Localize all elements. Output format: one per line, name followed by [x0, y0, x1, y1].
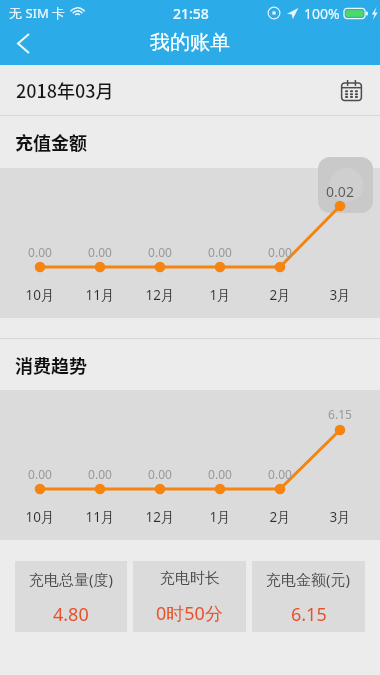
- staticText: 0.00: [266, 466, 294, 482]
- button[interactable]: 2018年03月: [0, 65, 380, 115]
- staticText: 消费趋势: [15, 352, 87, 378]
- button[interactable]: Back: [0, 26, 46, 65]
- staticText: 0.00: [26, 466, 54, 482]
- button[interactable]: 充电金额(元): [252, 561, 365, 632]
- staticText: 3月: [320, 508, 360, 526]
- staticText: 4.80: [53, 602, 89, 627]
- staticText: 6.15: [291, 602, 327, 627]
- staticText: 3月: [320, 286, 360, 304]
- staticText: 0.00: [146, 466, 174, 482]
- button[interactable]: 充电时长: [133, 561, 246, 632]
- staticText: 充电总量(度): [29, 569, 114, 589]
- staticText: 12月: [140, 508, 180, 526]
- staticText: 0.00: [266, 244, 294, 260]
- staticText: 1月: [200, 508, 240, 526]
- staticText: 0时50分: [156, 601, 223, 626]
- staticText: 11月: [80, 286, 120, 304]
- staticText: 2月: [260, 286, 300, 304]
- staticText: 充电金额(元): [266, 569, 351, 589]
- staticText: 充值金额: [15, 129, 87, 155]
- staticText: 0.00: [206, 466, 234, 482]
- staticText: 1月: [200, 286, 240, 304]
- staticText: 21:58: [173, 4, 209, 23]
- button[interactable]: 充电总量(度): [15, 561, 127, 632]
- staticText: 0.00: [206, 244, 234, 260]
- staticText: 10月: [20, 286, 60, 304]
- button[interactable]: Choose month: [338, 77, 364, 103]
- staticText: 0.02: [326, 182, 354, 201]
- staticText: 充电时长: [160, 569, 220, 588]
- staticText: 2月: [260, 508, 300, 526]
- staticText: 2018年03月: [16, 77, 114, 103]
- staticText: 12月: [140, 286, 180, 304]
- staticText: 6.15: [326, 406, 354, 422]
- staticText: 0.00: [86, 466, 114, 482]
- staticText: 无 SIM 卡: [9, 4, 66, 22]
- staticText: 0.00: [86, 244, 114, 260]
- staticText: 我的账单: [150, 30, 230, 55]
- staticText: 0.00: [146, 244, 174, 260]
- staticText: 11月: [80, 508, 120, 526]
- staticText: 10月: [20, 508, 60, 526]
- staticText: 100%: [304, 4, 340, 23]
- staticText: 0.00: [26, 244, 54, 260]
